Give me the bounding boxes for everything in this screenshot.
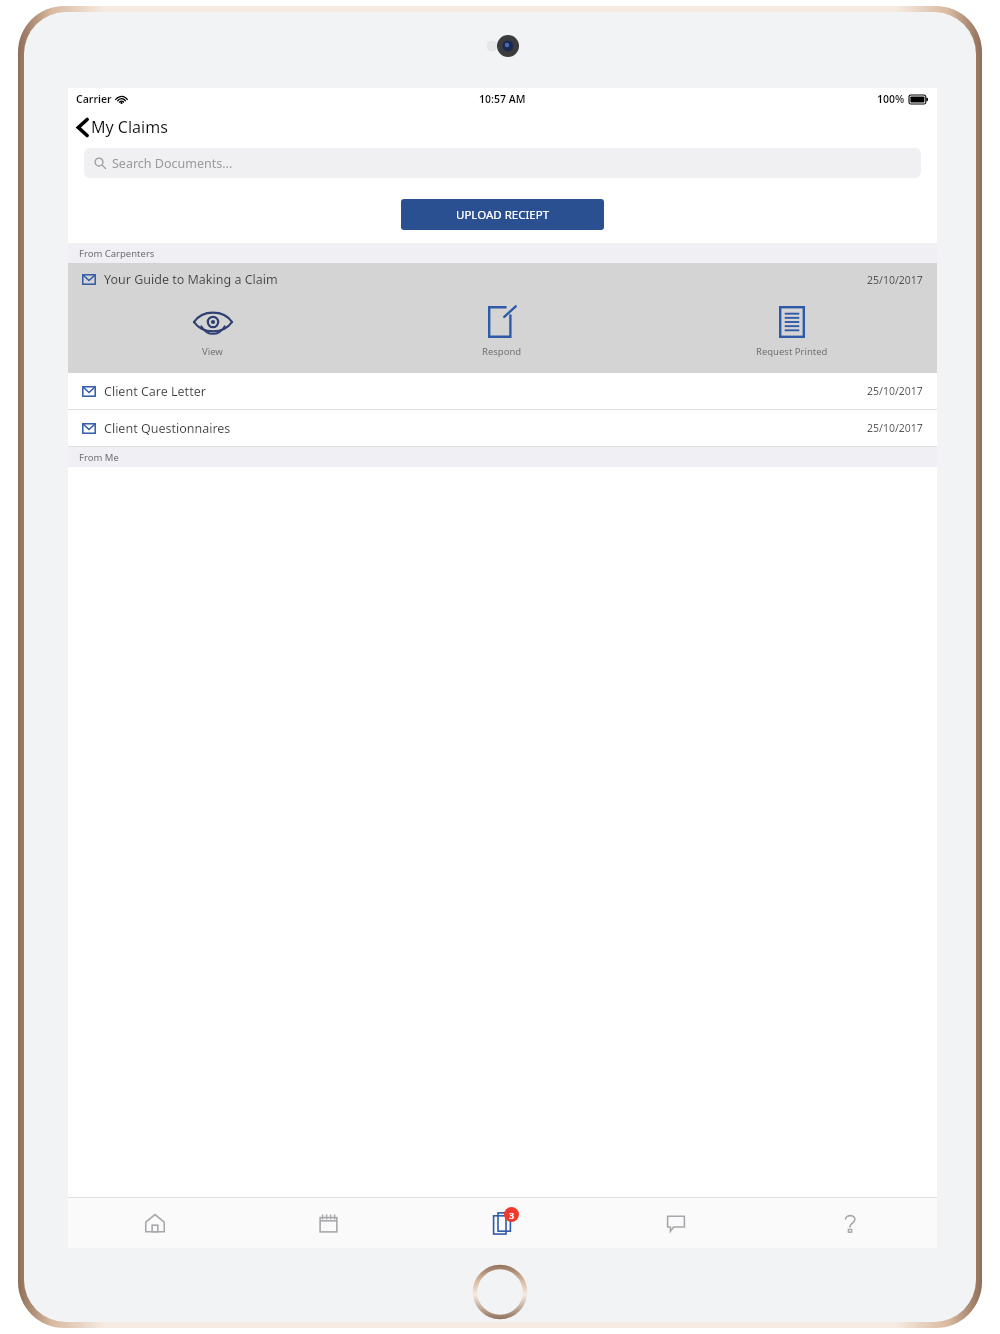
staticText: Client Questionnaires [104,420,231,437]
button[interactable]: Home [68,1198,241,1248]
staticText: Carrier [76,92,112,106]
button[interactable]: Search Documents... [84,148,921,178]
staticText: 100% [877,92,905,106]
staticText: Request Printed [756,345,828,358]
button[interactable]: Messages [589,1198,763,1248]
button[interactable]: View [68,296,357,373]
staticText: 25/10/2017 [867,421,923,435]
button[interactable]: UPLOAD RECIEPT [401,199,604,230]
button[interactable]: Request Printed [647,296,937,373]
button[interactable]: Respond [357,296,647,373]
staticText: From Me [79,451,119,464]
button[interactable]: Calendar [241,1198,415,1248]
staticText: Your Guide to Making a Claim [104,271,278,288]
staticText: 3 [509,1209,515,1221]
staticText: View [202,345,223,358]
staticText: UPLOAD RECIEPT [456,207,550,223]
button[interactable]: Documents [415,1198,589,1248]
button[interactable]: Help [763,1198,937,1248]
staticText: 25/10/2017 [867,273,923,287]
staticText: 10:57 AM [479,92,526,106]
staticText: Search Documents... [112,155,233,172]
button[interactable]: Client Care Letter [68,373,937,410]
button[interactable]: Client Questionnaires [68,410,937,447]
staticText: Respond [482,345,522,358]
button[interactable]: Your Guide to Making a Claim [68,263,937,373]
button[interactable]: Back to My Claims [68,112,178,142]
staticText: From Carpenters [79,247,155,260]
staticText: Client Care Letter [104,383,206,400]
staticText: 25/10/2017 [867,384,923,398]
staticText: My Claims [91,116,168,138]
